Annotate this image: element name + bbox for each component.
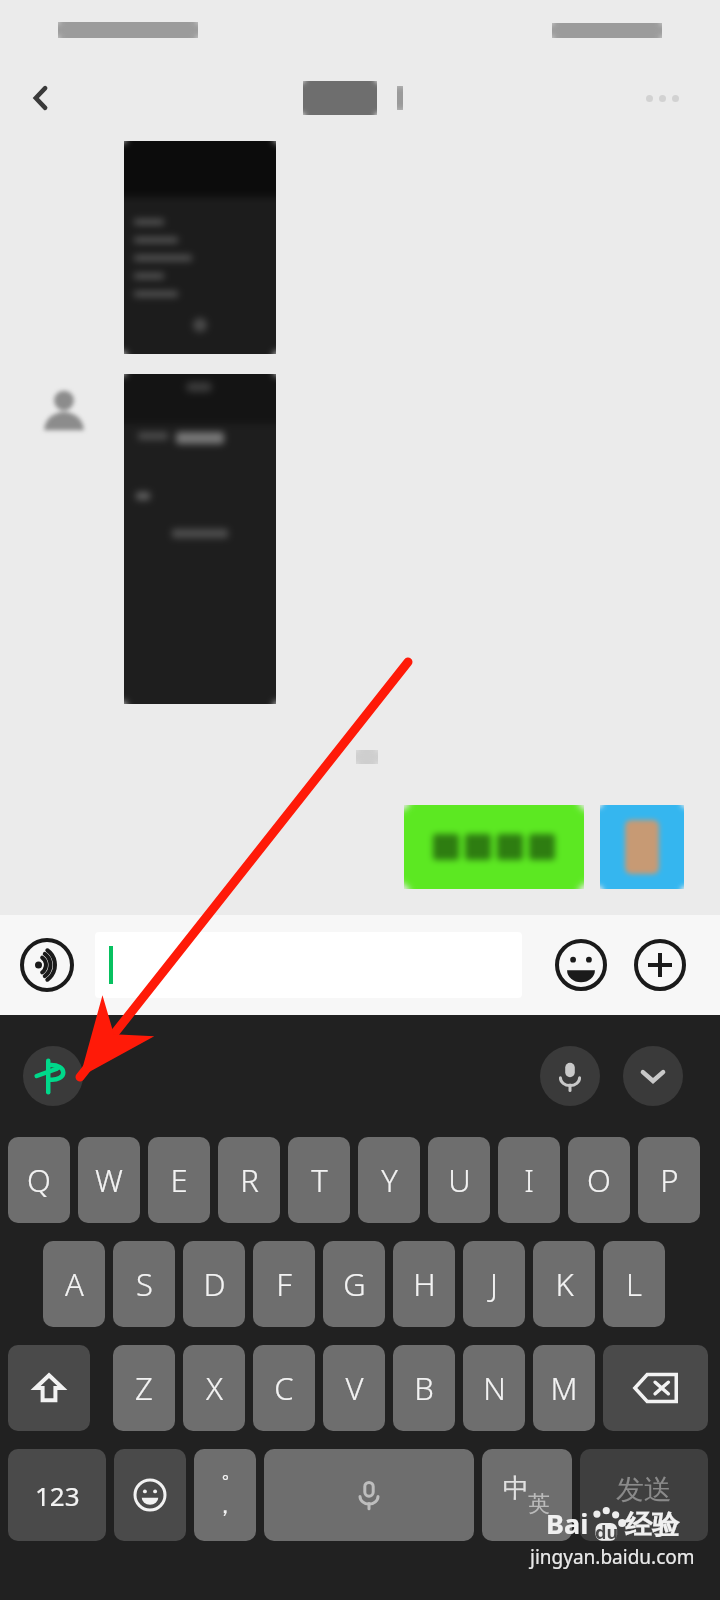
staticText: K [555, 1263, 574, 1305]
staticText: 123 [35, 1478, 80, 1513]
staticText: H [413, 1263, 436, 1305]
staticText: F [276, 1263, 292, 1305]
staticText: R [240, 1159, 259, 1201]
button[interactable] [404, 805, 584, 889]
staticText: X [206, 1367, 223, 1409]
button[interactable]: Emoji keyboard [114, 1449, 186, 1541]
button[interactable]: W [78, 1137, 140, 1223]
staticText: T [311, 1159, 328, 1201]
button[interactable]: B [393, 1345, 455, 1431]
button[interactable]: G [323, 1241, 385, 1327]
button[interactable]: H [393, 1241, 455, 1327]
button[interactable]: E [148, 1137, 210, 1223]
button[interactable]: C [253, 1345, 315, 1431]
button[interactable]: Q [8, 1137, 70, 1223]
button[interactable]: More functions [631, 936, 689, 994]
staticText: B [414, 1367, 434, 1409]
button[interactable]: R [218, 1137, 280, 1223]
button[interactable]: Hide keyboard [623, 1046, 683, 1106]
staticText: S [136, 1263, 153, 1305]
button[interactable]: Emoji [552, 936, 610, 994]
staticText: Q [27, 1159, 51, 1201]
button[interactable]: 123 [8, 1449, 106, 1541]
button[interactable] [95, 932, 522, 998]
button[interactable]: I [498, 1137, 560, 1223]
button[interactable]: Shift [8, 1345, 90, 1431]
staticText: N [483, 1367, 506, 1409]
staticText: D [203, 1263, 226, 1305]
button[interactable]: Punctuation [194, 1449, 256, 1541]
staticText: jingyan.baidu.com [530, 1544, 695, 1570]
staticText: P [660, 1159, 679, 1201]
button[interactable] [600, 805, 684, 889]
staticText: 中 [503, 1472, 529, 1505]
button[interactable]: X [183, 1345, 245, 1431]
staticText: C [274, 1367, 294, 1409]
button[interactable]: Backspace [603, 1345, 708, 1431]
staticText: du [595, 1520, 619, 1545]
button[interactable]: L [603, 1241, 665, 1327]
staticText: O [587, 1159, 611, 1201]
button[interactable]: V [323, 1345, 385, 1431]
staticText: A [65, 1263, 84, 1305]
staticText: Z [135, 1367, 153, 1409]
button[interactable]: Voice typing [540, 1046, 600, 1106]
staticText: ° [222, 1470, 229, 1492]
staticText: Bai [546, 1505, 589, 1542]
button[interactable]: N [463, 1345, 525, 1431]
button[interactable] [124, 374, 276, 704]
staticText: G [343, 1263, 366, 1305]
button[interactable]: O [568, 1137, 630, 1223]
staticText: J [490, 1263, 498, 1305]
button[interactable] [124, 141, 276, 354]
button[interactable]: Voice input [18, 936, 76, 994]
button[interactable]: A [43, 1241, 105, 1327]
button[interactable]: P [638, 1137, 700, 1223]
button[interactable]: D [183, 1241, 245, 1327]
staticText: L [626, 1263, 642, 1305]
staticText: V [345, 1367, 364, 1409]
staticText: M [550, 1367, 578, 1409]
staticText: W [95, 1159, 123, 1201]
button[interactable]: M [533, 1345, 595, 1431]
button[interactable]: Input method settings [23, 1046, 83, 1106]
button[interactable]: F [253, 1241, 315, 1327]
button[interactable]: 发送 [580, 1449, 708, 1541]
button[interactable]: Space / voice [264, 1449, 474, 1541]
button[interactable]: K [533, 1241, 595, 1327]
button[interactable]: Chinese English toggle [482, 1449, 572, 1541]
button[interactable]: Back [14, 71, 68, 125]
button[interactable]: J [463, 1241, 525, 1327]
staticText: U [448, 1159, 471, 1201]
button[interactable]: U [428, 1137, 490, 1223]
staticText: ， [214, 1492, 236, 1520]
staticText: E [170, 1159, 188, 1201]
button[interactable]: Z [113, 1345, 175, 1431]
staticText: I [524, 1159, 534, 1201]
button[interactable]: T [288, 1137, 350, 1223]
button[interactable]: S [113, 1241, 175, 1327]
staticText: 发送 [616, 1472, 672, 1507]
staticText: 英 [528, 1490, 550, 1518]
button[interactable]: More options [632, 71, 692, 125]
staticText: Y [381, 1159, 398, 1201]
button[interactable]: Y [358, 1137, 420, 1223]
staticText: 经验 [625, 1508, 679, 1542]
